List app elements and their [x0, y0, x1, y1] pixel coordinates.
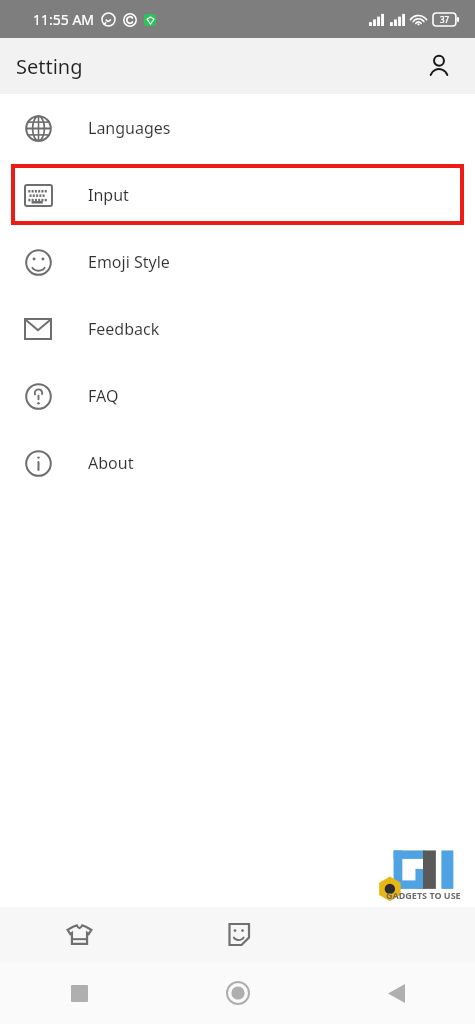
button[interactable]: FAQ	[0, 362, 475, 429]
button[interactable]: Themes	[0, 907, 159, 962]
button[interactable]: Input	[11, 164, 464, 225]
staticText: GADGETS TO USE	[386, 889, 461, 901]
staticText: Feedback	[88, 318, 160, 340]
button[interactable]: About	[0, 429, 475, 496]
button[interactable]: Account	[417, 44, 461, 88]
staticText: Setting	[16, 53, 83, 80]
staticText: Input	[88, 184, 129, 206]
button[interactable]: Stickers	[159, 907, 317, 962]
staticText: 37	[440, 14, 450, 25]
button[interactable]: Recents	[0, 962, 159, 1024]
button[interactable]: Languages	[0, 94, 475, 161]
staticText: 11:55 AM	[33, 10, 95, 29]
staticText: FAQ	[88, 385, 119, 407]
button[interactable]: Home	[159, 962, 317, 1024]
staticText: Languages	[88, 117, 171, 139]
button[interactable]: Feedback	[0, 295, 475, 362]
button[interactable]: Emoji Style	[0, 228, 475, 295]
staticText: Emoji Style	[88, 251, 170, 273]
button[interactable]: Back	[317, 962, 475, 1024]
staticText: About	[88, 452, 134, 474]
